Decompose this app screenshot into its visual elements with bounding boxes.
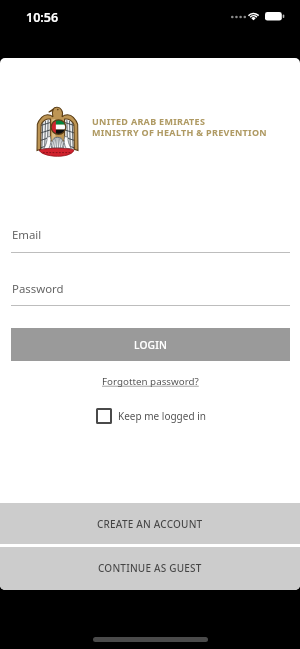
button[interactable]: Forgotten password? bbox=[94, 369, 207, 394]
button[interactable]: CREATE AN ACCOUNT bbox=[0, 503, 300, 544]
button[interactable]: Keep me logged in bbox=[96, 408, 206, 424]
button[interactable]: Email bbox=[11, 218, 290, 253]
staticText: Email bbox=[12, 227, 42, 243]
staticText: LOGIN bbox=[134, 338, 168, 352]
staticText: Keep me logged in bbox=[118, 409, 206, 423]
staticText: Forgotten password? bbox=[102, 375, 199, 388]
button[interactable]: LOGIN bbox=[11, 328, 290, 361]
other: Home indicator bbox=[93, 637, 208, 642]
staticText: CREATE AN ACCOUNT bbox=[97, 517, 203, 531]
staticText: UNITED ARAB EMIRATES bbox=[92, 115, 206, 127]
button[interactable]: CONTINUE AS GUEST bbox=[0, 547, 300, 590]
staticText: CONTINUE AS GUEST bbox=[98, 561, 202, 575]
button[interactable]: Password bbox=[11, 272, 290, 306]
staticText: MINISTRY OF HEALTH & PREVENTION bbox=[92, 126, 267, 138]
staticText: 10:56 bbox=[26, 9, 59, 26]
staticText: Password bbox=[12, 281, 64, 297]
